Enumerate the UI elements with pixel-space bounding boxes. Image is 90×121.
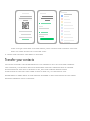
staticText: Once the transfer has completed you can … <box>5 63 76 72</box>
staticText: Remember to keep both of the devices plu… <box>5 74 76 79</box>
staticText: Scan the QR code with the new device, th… <box>11 47 79 52</box>
staticText: 2. Select the contacts you want to trans… <box>5 53 44 56</box>
staticText: Transfer your contacts <box>5 58 35 62</box>
